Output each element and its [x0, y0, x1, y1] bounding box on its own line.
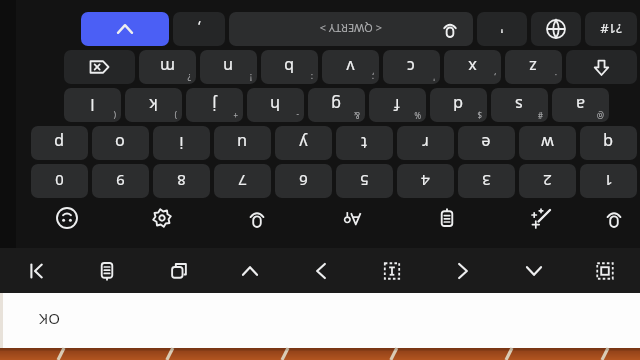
staticText: s	[515, 94, 523, 116]
staticText: ;	[371, 72, 374, 83]
button[interactable]: Move to start	[18, 254, 56, 288]
staticText: e	[481, 132, 491, 154]
staticText: 3	[482, 171, 491, 191]
button[interactable]: ,	[173, 12, 225, 46]
button[interactable]: Voice typing	[590, 201, 638, 235]
staticText: l	[90, 94, 95, 116]
staticText: '	[500, 19, 504, 38]
staticText: u	[237, 132, 247, 154]
staticText: )	[174, 110, 177, 121]
button[interactable]: p	[31, 126, 88, 160]
button[interactable]: Copy	[160, 254, 198, 288]
button[interactable]: < QWERTY >	[229, 12, 473, 46]
staticText: h	[270, 94, 280, 116]
staticText: < QWERTY >	[319, 21, 382, 36]
button[interactable]: d	[430, 88, 487, 122]
staticText: r	[422, 132, 429, 154]
staticText: a	[576, 94, 585, 116]
button[interactable]: y	[275, 126, 332, 160]
button[interactable]: Backspace	[64, 50, 135, 84]
button[interactable]: Settings	[115, 201, 210, 235]
button[interactable]: Select text	[373, 254, 411, 288]
staticText: !	[249, 72, 252, 83]
staticText: t	[361, 132, 367, 154]
button[interactable]: ?1#	[585, 12, 637, 46]
button[interactable]: 3	[458, 164, 515, 198]
button[interactable]: i	[153, 126, 210, 160]
button[interactable]: 9	[92, 164, 149, 198]
staticText: 6	[299, 171, 308, 191]
button[interactable]: Translate	[305, 201, 400, 235]
staticText: w	[541, 132, 554, 154]
staticText: 8	[177, 171, 186, 191]
button[interactable]: e	[458, 126, 515, 160]
button[interactable]: Select all	[586, 254, 624, 288]
button[interactable]: Paste	[88, 254, 126, 288]
staticText: x	[468, 56, 477, 78]
staticText: k	[149, 94, 158, 116]
staticText: ,	[493, 72, 496, 83]
staticText: f	[394, 94, 400, 116]
button[interactable]: g	[308, 88, 365, 122]
staticText: #	[537, 110, 543, 121]
staticText: 1	[604, 171, 613, 191]
staticText: +	[233, 110, 238, 121]
button[interactable]: t	[336, 126, 393, 160]
button[interactable]: m	[139, 50, 196, 84]
button[interactable]: z	[505, 50, 562, 84]
button[interactable]: u	[214, 126, 271, 160]
button[interactable]: o	[92, 126, 149, 160]
staticText: g	[331, 94, 341, 116]
button[interactable]: 0	[31, 164, 88, 198]
button[interactable]: 7	[214, 164, 271, 198]
button[interactable]: Enter	[81, 12, 169, 46]
button[interactable]: 5	[336, 164, 393, 198]
button[interactable]: k	[125, 88, 182, 122]
button[interactable]: w	[519, 126, 576, 160]
button[interactable]: Magic compose	[495, 201, 590, 235]
button[interactable]: l	[64, 88, 121, 122]
staticText: q	[603, 132, 613, 154]
button[interactable]: 4	[397, 164, 454, 198]
button[interactable]: 8	[153, 164, 210, 198]
button[interactable]: Clipboard	[400, 201, 495, 235]
staticText: ?1#	[600, 20, 622, 38]
staticText: 5	[360, 171, 369, 191]
button[interactable]: Emoji	[20, 201, 115, 235]
button[interactable]: b	[261, 50, 318, 84]
button[interactable]: a	[552, 88, 609, 122]
button[interactable]: Shift	[566, 50, 637, 84]
staticText: OK	[38, 310, 60, 330]
button[interactable]: f	[369, 88, 426, 122]
button[interactable]: Change language	[531, 12, 581, 46]
button[interactable]: n	[200, 50, 257, 84]
staticText: $	[477, 110, 482, 121]
button[interactable]: Move down	[515, 254, 553, 288]
button[interactable]: Search	[210, 201, 305, 235]
staticText: p	[54, 132, 64, 154]
button[interactable]: Move up	[231, 254, 269, 288]
button[interactable]: 6	[275, 164, 332, 198]
staticText: d	[453, 94, 463, 116]
button[interactable]: '	[477, 12, 527, 46]
button[interactable]: v	[322, 50, 379, 84]
button[interactable]: Move right	[444, 254, 482, 288]
button[interactable]: q	[580, 126, 637, 160]
button[interactable]: h	[247, 88, 304, 122]
staticText: m	[160, 56, 175, 78]
staticText: b	[284, 56, 294, 78]
staticText: @	[596, 110, 604, 121]
button[interactable]: x	[444, 50, 501, 84]
button[interactable]: Move left	[302, 254, 340, 288]
button[interactable]: 2	[519, 164, 576, 198]
staticText: (	[113, 110, 116, 121]
staticText: &	[354, 110, 360, 121]
button[interactable]: s	[491, 88, 548, 122]
button[interactable]: c	[383, 50, 440, 84]
button[interactable]: 1	[580, 164, 637, 198]
button[interactable]: j	[186, 88, 243, 122]
staticText: z	[529, 56, 537, 78]
staticText: j	[212, 94, 217, 116]
button[interactable]: r	[397, 126, 454, 160]
staticText: :	[310, 72, 313, 83]
